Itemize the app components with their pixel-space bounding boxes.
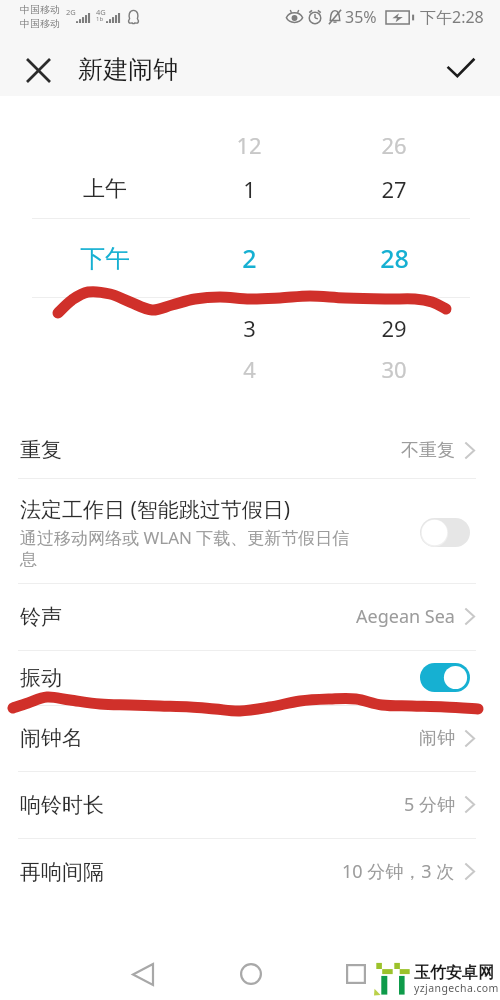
button[interactable]: 30 xyxy=(344,347,444,391)
staticText: 3 xyxy=(243,313,256,343)
staticText: 35% xyxy=(345,6,377,28)
staticText: 1 xyxy=(243,174,256,204)
staticText: 再响间隔 xyxy=(20,859,104,885)
button[interactable]: Home xyxy=(227,950,275,998)
staticText: 通过移动网络或 WLAN 下载、更新节假日信 息 xyxy=(20,526,350,570)
staticText: 法定工作日 (智能跳过节假日) xyxy=(20,495,291,524)
button[interactable]: Recents xyxy=(332,950,380,998)
button[interactable]: 27 xyxy=(344,167,444,211)
staticText: 下午2:28 xyxy=(420,6,484,28)
button[interactable]: 重复 xyxy=(0,422,500,478)
staticText: 下午 xyxy=(80,243,130,274)
button[interactable]: Vibration on xyxy=(420,663,470,692)
staticText: 不重复 xyxy=(401,439,455,462)
button[interactable]: Toggle off xyxy=(420,518,470,547)
button[interactable]: Back xyxy=(119,950,167,998)
staticText: 10 分钟，3 次 xyxy=(342,859,455,884)
staticText: Aegean Sea xyxy=(356,604,455,629)
button[interactable]: 下午 xyxy=(55,236,155,280)
button[interactable]: 2 xyxy=(199,236,299,280)
staticText: 29 xyxy=(381,313,407,343)
button[interactable]: 铃声 xyxy=(0,583,500,650)
button[interactable]: 3 xyxy=(199,306,299,350)
button[interactable]: 29 xyxy=(344,306,444,350)
button[interactable]: 法定工作日 (智能跳过节假日) xyxy=(0,478,500,583)
staticText: yzjangecha.com xyxy=(414,981,499,995)
button[interactable]: 26 xyxy=(344,123,444,167)
button[interactable]: 28 xyxy=(344,236,444,280)
staticText: 5 分钟 xyxy=(404,792,455,817)
staticText: 4G xyxy=(96,7,106,17)
button[interactable]: 再响间隔 xyxy=(0,838,500,905)
staticText: 4 xyxy=(243,354,256,384)
button[interactable]: 闹钟名 xyxy=(0,705,500,771)
staticText: 2 xyxy=(242,241,257,275)
staticText: 中国移动 xyxy=(20,3,60,16)
staticText: 新建闹钟 xyxy=(78,54,178,85)
staticText: 30 xyxy=(381,354,407,384)
staticText: 玉竹安卓网 xyxy=(414,963,494,983)
staticText: 27 xyxy=(381,174,407,204)
staticText: 26 xyxy=(381,130,407,160)
staticText: 28 xyxy=(380,241,409,275)
staticText: 响铃时长 xyxy=(20,792,104,818)
button[interactable]: Close xyxy=(16,48,60,92)
staticText: 中国移动 xyxy=(20,17,60,30)
staticText: 2G xyxy=(66,7,76,17)
button[interactable]: 振动 xyxy=(0,650,500,705)
button[interactable]: 12 xyxy=(199,123,299,167)
button[interactable]: Confirm xyxy=(438,44,484,90)
staticText: 铃声 xyxy=(20,604,62,630)
button[interactable]: 上午 xyxy=(55,167,155,211)
staticText: 12 xyxy=(236,130,262,160)
button[interactable]: 1 xyxy=(199,167,299,211)
button[interactable]: 响铃时长 xyxy=(0,771,500,838)
staticText: 上午 xyxy=(83,175,127,203)
staticText: 振动 xyxy=(20,665,62,691)
staticText: 重复 xyxy=(20,437,62,463)
staticText: 1b xyxy=(96,15,104,23)
button[interactable]: 4 xyxy=(199,347,299,391)
staticText: 闹钟名 xyxy=(20,725,83,751)
staticText: 闹钟 xyxy=(419,727,455,750)
